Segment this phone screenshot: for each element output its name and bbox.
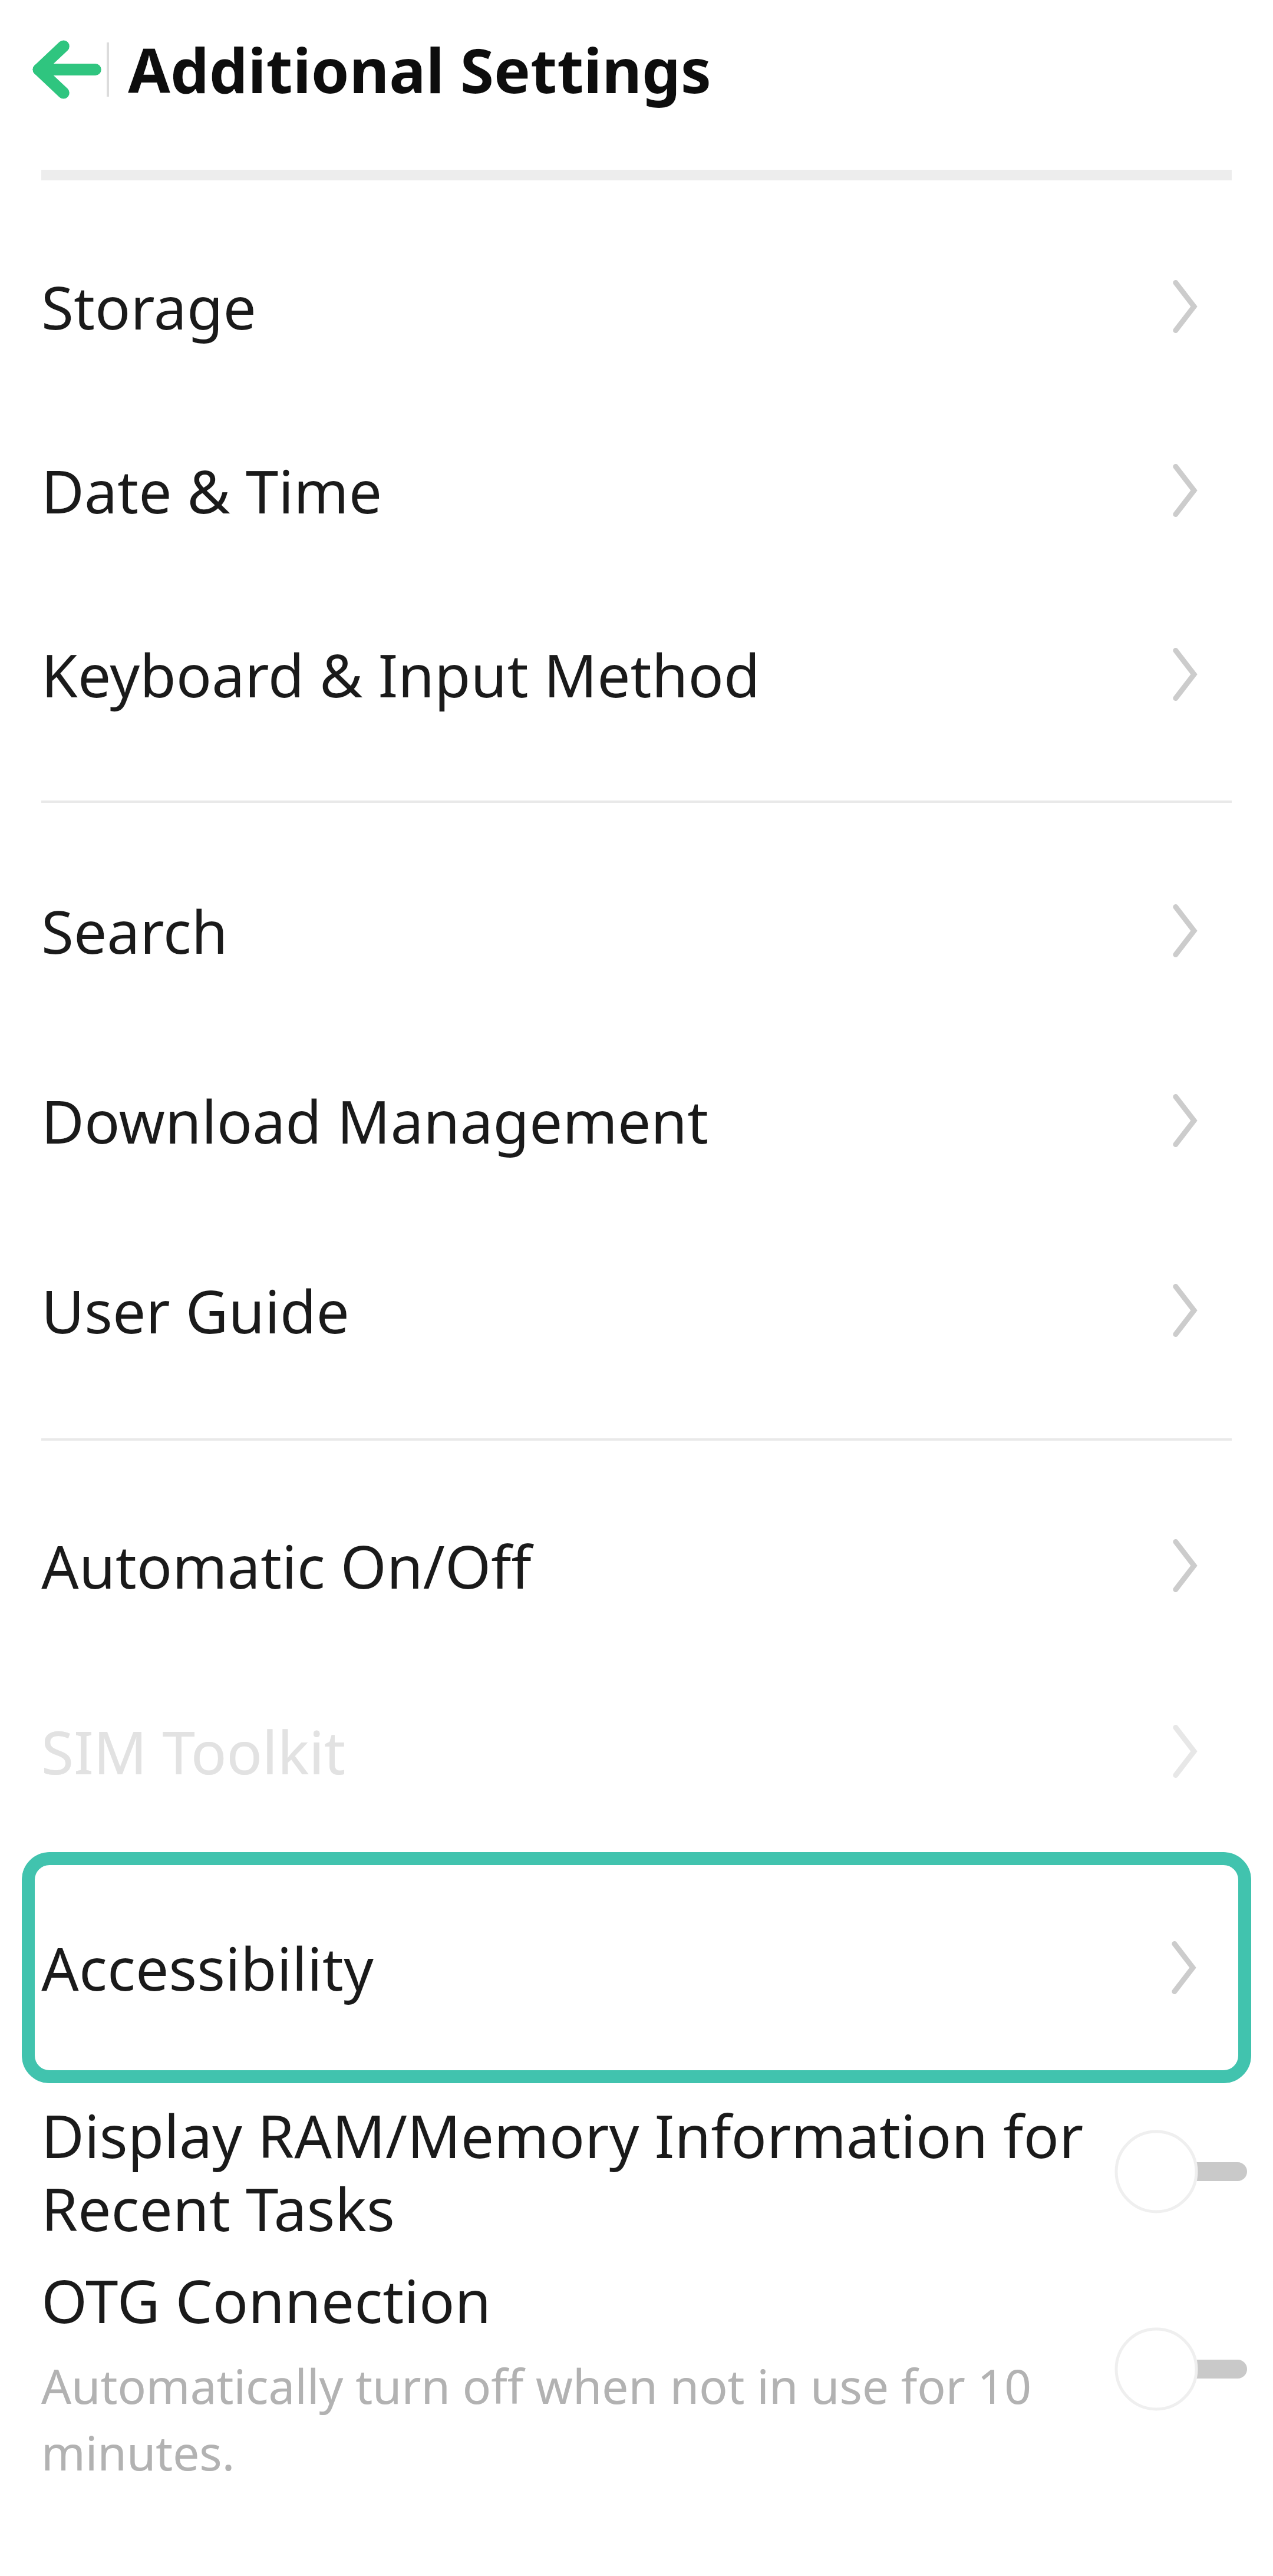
staticText: Automatically turn off when not in use f… <box>41 2353 1114 2478</box>
staticText: OTG Connection <box>41 2260 492 2340</box>
button[interactable]: Storage <box>0 215 1273 398</box>
staticText: Automatic On/Off <box>41 1526 1173 1606</box>
button[interactable]: Download Management <box>0 1026 1273 1215</box>
button[interactable]: Automatic On/Off <box>0 1473 1273 1658</box>
button[interactable]: Date & Time <box>0 398 1273 582</box>
staticText: SIM Toolkit <box>41 1711 1173 1791</box>
button[interactable]: Accessibility <box>22 1852 1251 2083</box>
staticText: Keyboard & Input Method <box>41 634 1173 714</box>
staticText: Search <box>41 891 1173 971</box>
staticText: Download Management <box>41 1081 1173 1161</box>
button[interactable]: OTG Connection <box>0 2260 1273 2478</box>
button[interactable]: SIM Toolkit <box>0 1658 1273 1844</box>
staticText: Display RAM/Memory Information for Recen… <box>41 2095 1114 2249</box>
staticText: Accessibility <box>41 1928 1172 2008</box>
button[interactable]: Search <box>0 836 1273 1026</box>
button[interactable]: User Guide <box>0 1215 1273 1405</box>
button[interactable]: Display RAM/Memory Information for Recen… <box>0 2083 1273 2260</box>
staticText: User Guide <box>41 1270 1173 1350</box>
staticText: Additional Settings <box>128 28 711 111</box>
staticText: Date & Time <box>41 450 1173 531</box>
button[interactable]: Back <box>28 32 102 106</box>
button[interactable]: Keyboard & Input Method <box>0 582 1273 766</box>
staticText: Storage <box>41 266 1173 347</box>
